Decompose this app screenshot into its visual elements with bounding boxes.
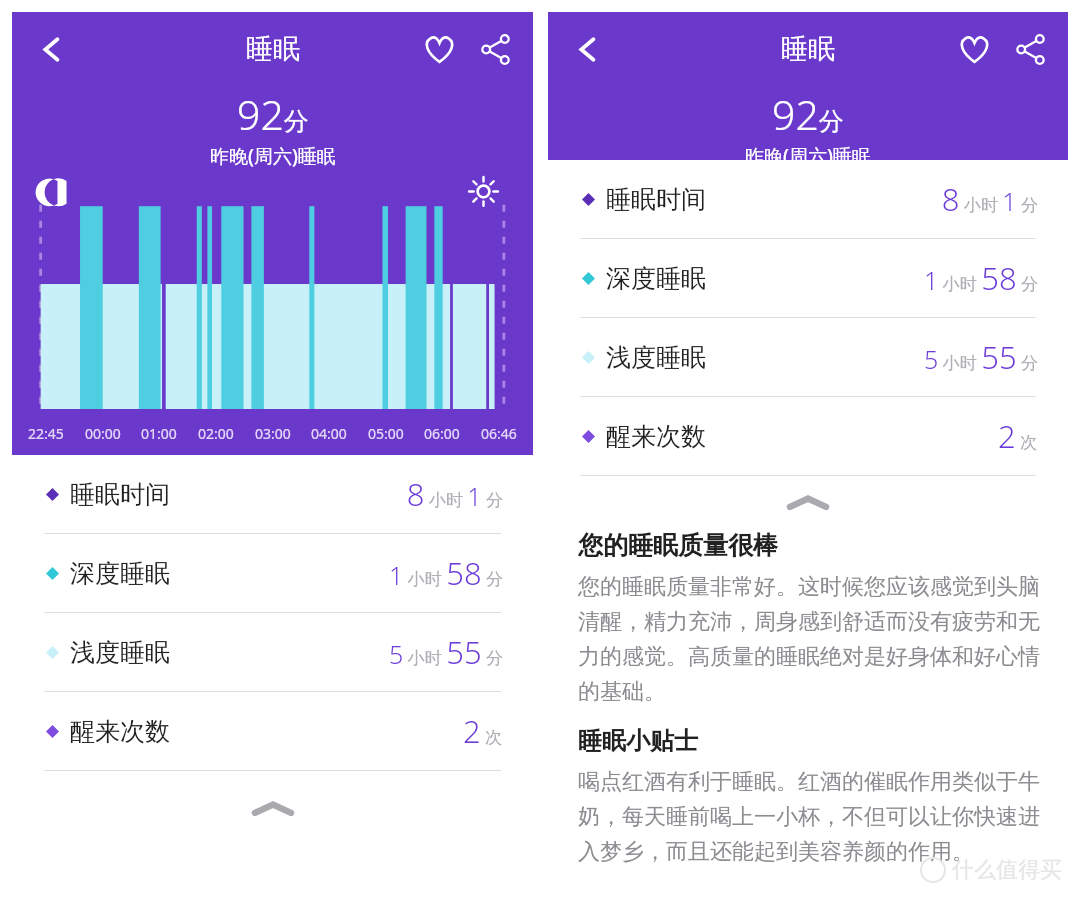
button[interactable]: Back [24, 22, 78, 76]
button[interactable]: 浅度睡眠 [12, 613, 533, 691]
staticText: 92分 [237, 86, 309, 142]
staticText: 浅度睡眠 [606, 342, 706, 373]
staticText: 8 小时 1 分 [406, 473, 503, 515]
staticText: 22:45 [28, 424, 64, 443]
staticText: 睡眠时间 [70, 479, 170, 510]
staticText: 浅度睡眠 [70, 637, 170, 668]
staticText: 06:46 [481, 424, 517, 443]
staticText: 睡眠时间 [606, 184, 706, 215]
staticText: 01:00 [141, 424, 177, 443]
staticText: 03:00 [255, 424, 291, 443]
staticText: 醒来次数 [606, 421, 706, 452]
staticText: 2 次 [463, 710, 503, 752]
staticText: 5 小时 55 分 [389, 631, 503, 673]
button[interactable]: Favorite [411, 21, 467, 77]
staticText: 8 小时 1 分 [941, 178, 1038, 220]
staticText: 您的睡眠质量很棒 [578, 530, 778, 561]
button[interactable]: 深度睡眠 [12, 534, 533, 612]
staticText: 什么值得买 [952, 856, 1062, 884]
button[interactable]: 深度睡眠 [548, 239, 1068, 317]
button[interactable]: 睡眠时间 [548, 160, 1068, 238]
button[interactable]: Favorite [946, 21, 1002, 77]
staticText: 昨晚(周六)睡眠 [745, 143, 871, 160]
button[interactable]: 醒来次数 [12, 692, 533, 770]
button[interactable]: Back [560, 22, 614, 76]
staticText: 05:00 [368, 424, 404, 443]
staticText: 深度睡眠 [70, 558, 170, 589]
staticText: 92分 [772, 86, 844, 142]
staticText: 02:00 [198, 424, 234, 443]
button[interactable]: 浅度睡眠 [548, 318, 1068, 396]
staticText: 睡眠 [781, 32, 835, 66]
staticText: 1 小时 58 分 [924, 257, 1038, 299]
staticText: 深度睡眠 [606, 263, 706, 294]
staticText: 04:00 [311, 424, 347, 443]
staticText: 睡眠小贴士 [578, 726, 698, 756]
button[interactable]: 醒来次数 [548, 397, 1068, 475]
staticText: 睡眠 [246, 32, 300, 66]
staticText: 2 次 [998, 415, 1038, 457]
staticText: 喝点红酒有利于睡眠。红酒的催眠作用类似于牛奶，每天睡前喝上一小杯，不但可以让你快… [578, 768, 1042, 866]
button[interactable]: 睡眠时间 [12, 455, 533, 533]
staticText: 00:00 [85, 424, 121, 443]
button[interactable]: Share [1002, 21, 1058, 77]
staticText: 昨晚(周六)睡眠 [210, 143, 336, 169]
staticText: 06:00 [424, 424, 460, 443]
staticText: 您的睡眠质量非常好。这时候您应该感觉到头脑清醒，精力充沛，周身感到舒适而没有疲劳… [578, 573, 1042, 706]
staticText: 5 小时 55 分 [924, 336, 1038, 378]
button[interactable]: Share [467, 21, 523, 77]
staticText: 醒来次数 [70, 716, 170, 747]
staticText: 1 小时 58 分 [389, 552, 503, 594]
